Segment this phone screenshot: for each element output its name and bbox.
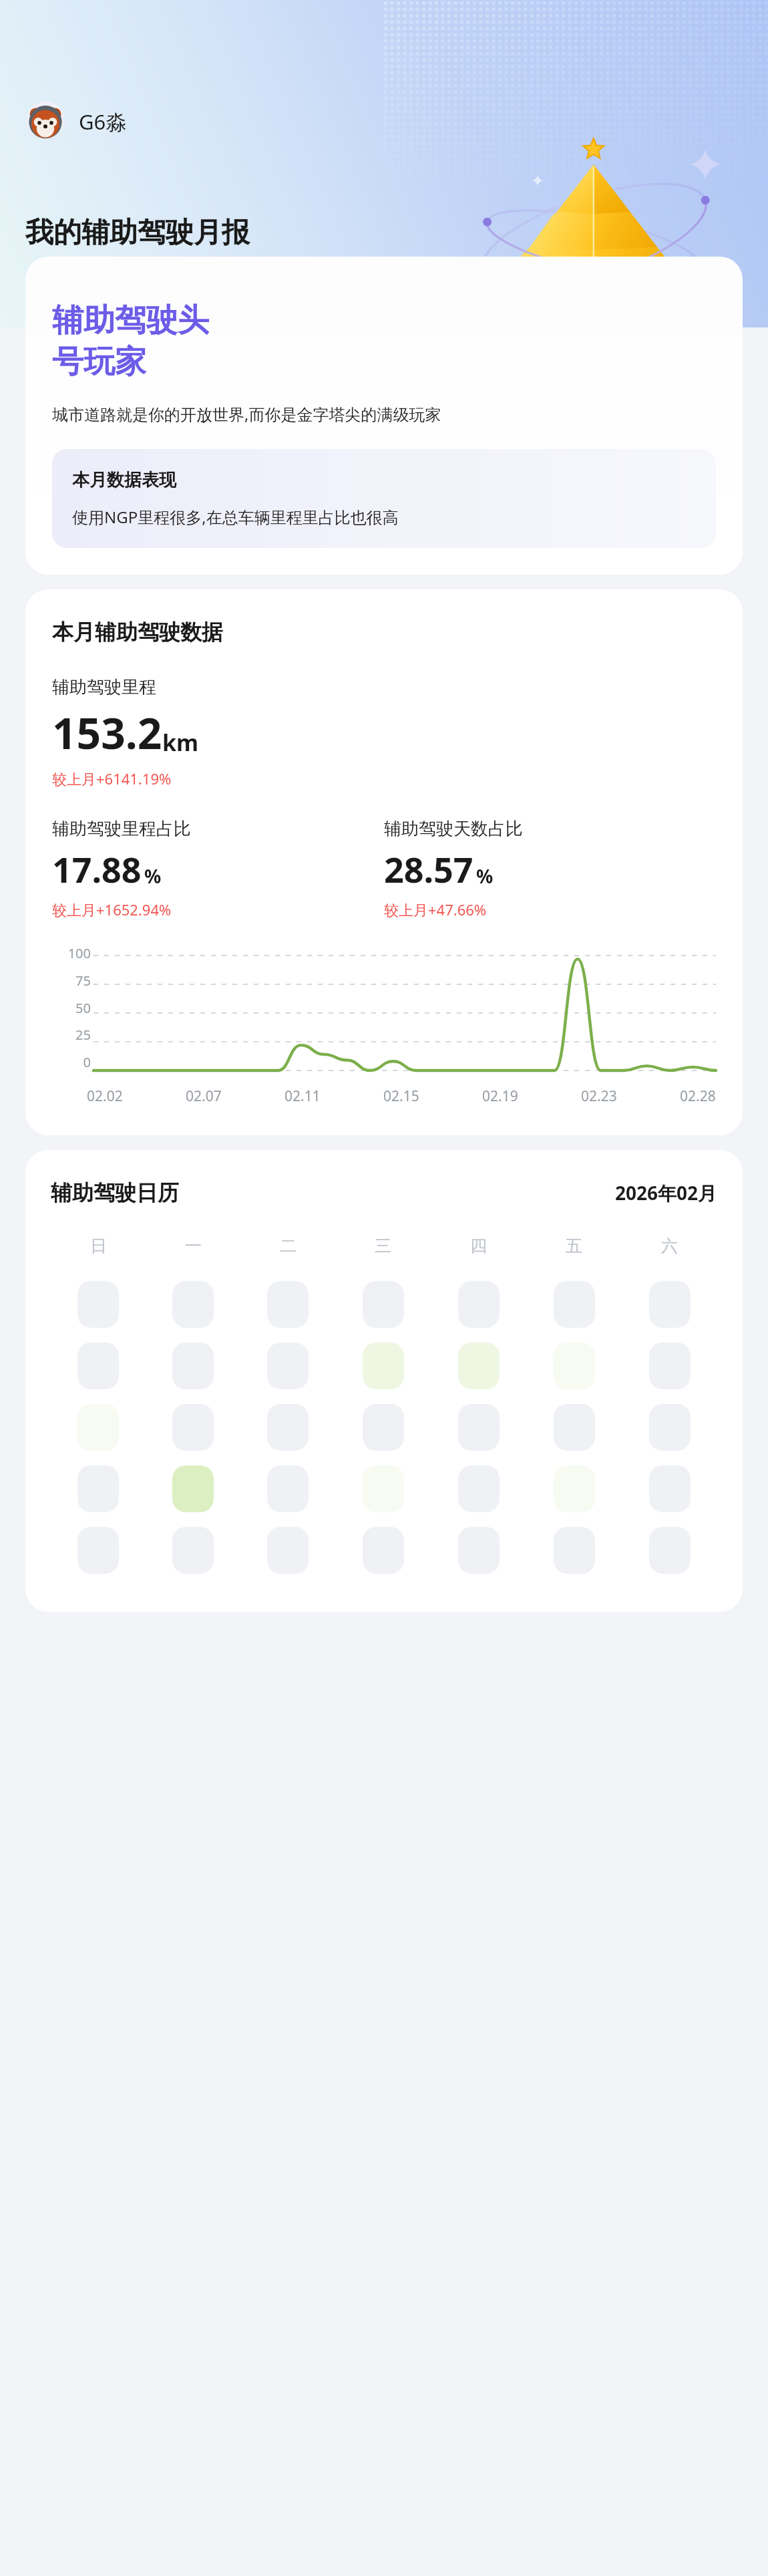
button[interactable]	[172, 1342, 214, 1389]
staticText: 02.07	[186, 1087, 222, 1106]
button[interactable]	[554, 1465, 595, 1512]
button[interactable]	[649, 1527, 691, 1574]
staticText: 辅助驾驶里程占比	[52, 818, 191, 840]
button[interactable]	[172, 1281, 214, 1328]
button[interactable]	[458, 1281, 500, 1328]
staticText: 100	[67, 944, 91, 962]
button[interactable]	[77, 1342, 119, 1389]
staticText: 02.15	[383, 1087, 419, 1106]
staticText: 二	[280, 1236, 297, 1256]
button[interactable]	[77, 1465, 119, 1512]
button[interactable]	[172, 1527, 214, 1574]
staticText: 使用NGP里程很多,在总车辆里程里占比也很高	[72, 506, 399, 528]
staticText: G6淼	[79, 108, 127, 136]
button[interactable]	[267, 1465, 309, 1512]
staticText: %	[144, 863, 162, 889]
button[interactable]	[554, 1281, 595, 1328]
staticText: 城市道路就是你的开放世界,而你是金字塔尖的满级玩家	[52, 403, 441, 425]
button[interactable]	[363, 1342, 404, 1389]
staticText: 六	[661, 1236, 678, 1256]
button[interactable]	[649, 1281, 691, 1328]
button[interactable]	[649, 1404, 691, 1451]
staticText: 02.19	[482, 1087, 518, 1106]
staticText: 四	[470, 1236, 487, 1256]
button[interactable]	[458, 1465, 500, 1512]
staticText: 28.57	[384, 845, 473, 893]
button[interactable]	[554, 1527, 595, 1574]
button[interactable]: 辅助驾驶头 号玩家	[25, 257, 743, 575]
staticText: 02.11	[284, 1087, 321, 1106]
button[interactable]: 本月数据表现	[52, 449, 716, 548]
button[interactable]	[172, 1404, 214, 1451]
staticText: 较上月+1652.94%	[52, 899, 172, 919]
staticText: 02.23	[581, 1087, 617, 1106]
staticText: 辅助驾驶里程	[52, 676, 156, 698]
button[interactable]	[458, 1404, 500, 1451]
button[interactable]	[649, 1465, 691, 1512]
button[interactable]	[554, 1342, 595, 1389]
staticText: 五	[566, 1236, 582, 1256]
button[interactable]	[649, 1342, 691, 1389]
staticText: 02.02	[87, 1087, 123, 1106]
button[interactable]: 辅助驾驶天数占比	[384, 818, 716, 919]
staticText: 三	[375, 1236, 391, 1256]
staticText: 本月数据表现	[72, 469, 176, 491]
staticText: 02.28	[680, 1087, 716, 1106]
button[interactable]	[77, 1527, 119, 1574]
button[interactable]	[458, 1527, 500, 1574]
button[interactable]: 本月辅助驾驶数据	[25, 589, 743, 1135]
button[interactable]	[554, 1404, 595, 1451]
staticText: 较上月+6141.19%	[52, 768, 172, 789]
staticText: 2026年02月	[615, 1180, 717, 1205]
staticText: 辅助驾驶日历	[51, 1179, 179, 1206]
button[interactable]	[77, 1281, 119, 1328]
button[interactable]	[363, 1465, 404, 1512]
button[interactable]	[267, 1527, 309, 1574]
button[interactable]	[363, 1527, 404, 1574]
staticText: 17.88	[52, 845, 142, 893]
staticText: 辅助驾驶头 号玩家	[52, 301, 209, 382]
staticText: 50	[75, 999, 91, 1017]
staticText: km	[162, 727, 199, 758]
button[interactable]	[363, 1404, 404, 1451]
staticText: 75	[75, 972, 91, 990]
button[interactable]	[458, 1342, 500, 1389]
staticText: 0	[83, 1053, 91, 1071]
staticText: 153.2	[52, 704, 162, 762]
button[interactable]: G6淼	[25, 102, 127, 142]
staticText: 较上月+47.66%	[384, 899, 487, 919]
staticText: 我的辅助驾驶月报	[25, 215, 250, 251]
button[interactable]	[267, 1404, 309, 1451]
button[interactable]: 辅助驾驶日历	[25, 1150, 743, 1612]
button[interactable]	[267, 1281, 309, 1328]
staticText: 本月辅助驾驶数据	[52, 619, 223, 646]
button[interactable]	[363, 1281, 404, 1328]
button[interactable]	[172, 1465, 214, 1512]
button[interactable]: 辅助驾驶里程占比	[52, 818, 384, 919]
staticText: 25	[75, 1026, 91, 1044]
staticText: 辅助驾驶天数占比	[384, 818, 523, 840]
button[interactable]	[267, 1342, 309, 1389]
staticText: 日	[90, 1236, 107, 1256]
button[interactable]	[77, 1404, 119, 1451]
staticText: 一	[185, 1236, 202, 1256]
staticText: %	[476, 863, 494, 889]
